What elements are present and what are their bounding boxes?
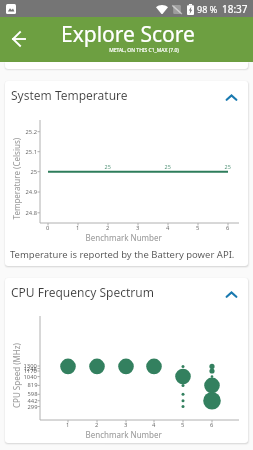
staticText: METAL, ON THIS C1_MAX (7.0) xyxy=(39,47,249,54)
button[interactable]: CPU Frequency Spectrum xyxy=(5,278,248,443)
button[interactable]: Collapse xyxy=(221,87,241,107)
staticText: Temperature is reported by the Battery p… xyxy=(10,248,235,261)
staticText: CPU Speed (MHz) xyxy=(11,343,22,408)
button[interactable]: System Temperature xyxy=(5,81,248,266)
staticText: System Temperature xyxy=(11,87,128,103)
staticText: Temperature (Celsius) xyxy=(10,137,21,219)
staticText: Explore Score xyxy=(61,20,195,49)
staticText: 18:37 xyxy=(222,2,248,16)
button[interactable]: Back xyxy=(2,23,34,55)
button[interactable]: Collapse xyxy=(221,284,241,304)
staticText: 98 % xyxy=(197,3,218,15)
staticText: CPU Frequency Spectrum xyxy=(11,284,154,300)
